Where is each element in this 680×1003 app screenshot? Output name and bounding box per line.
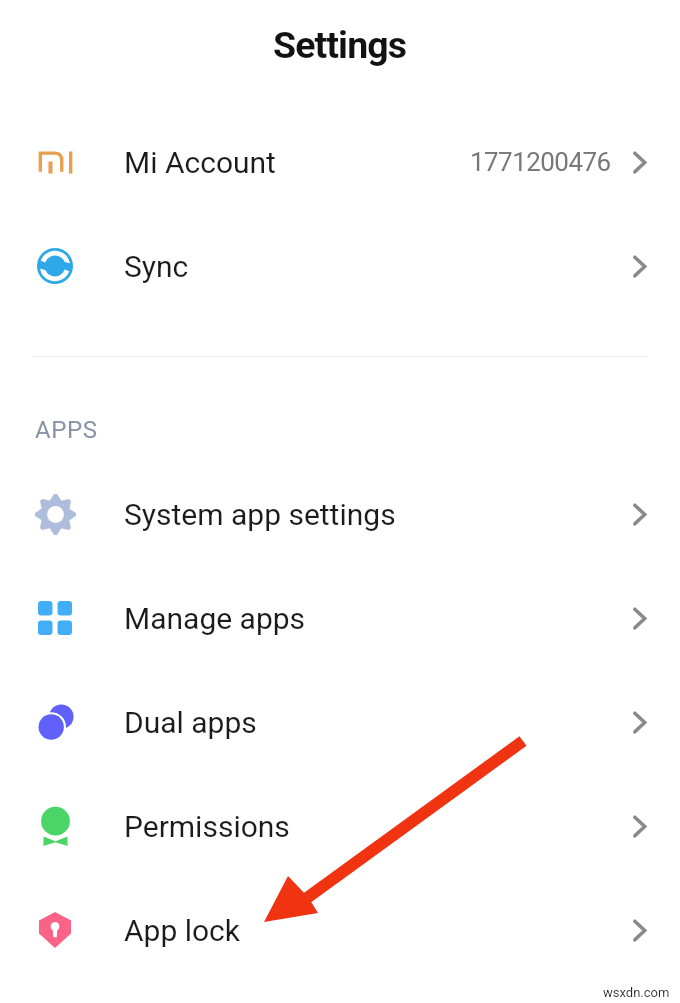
staticText: APPS (35, 416, 98, 444)
button[interactable]: Sync (0, 214, 680, 318)
staticText: Settings (273, 23, 407, 67)
staticText: Sync (124, 249, 189, 284)
staticText: Mi Account (124, 145, 276, 180)
button[interactable]: Manage apps (0, 566, 680, 670)
button[interactable]: System app settings (0, 462, 680, 566)
button[interactable]: Permissions (0, 774, 680, 878)
staticText: Dual apps (124, 705, 257, 740)
staticText: System app settings (124, 497, 396, 532)
staticText: App lock (124, 913, 241, 948)
button[interactable]: App lock (0, 878, 680, 982)
staticText: Permissions (124, 809, 290, 844)
button[interactable]: Dual apps (0, 670, 680, 774)
button[interactable]: Mi Account (0, 110, 680, 214)
staticText: 1771200476 (470, 147, 611, 177)
staticText: wsxdn.com (603, 985, 670, 1000)
staticText: Manage apps (124, 601, 306, 636)
